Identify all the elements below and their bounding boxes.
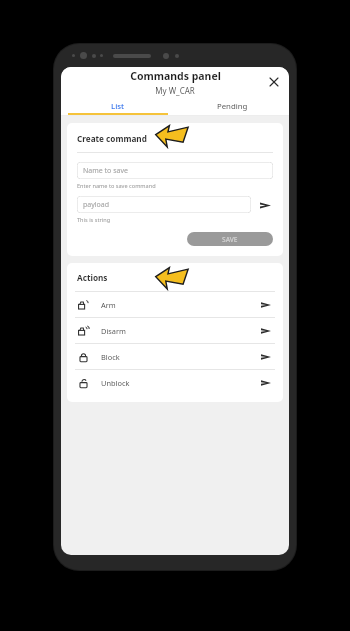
staticText: My W_CAR: [155, 85, 195, 96]
staticText: Create command: [77, 133, 147, 144]
staticText: Enter name to save command: [77, 182, 156, 190]
staticText: Commands panel: [130, 69, 221, 83]
staticText: List: [111, 101, 125, 112]
staticText: Disarm: [101, 326, 126, 336]
button[interactable]: Pending: [175, 97, 289, 115]
button[interactable]: Block: [67, 344, 283, 369]
staticText: Block: [101, 352, 120, 362]
button[interactable]: List: [61, 97, 175, 115]
staticText: Pending: [217, 101, 248, 112]
button[interactable]: Disarm: [67, 318, 283, 343]
staticText: Name to save: [83, 166, 128, 176]
button[interactable]: Send payload: [257, 197, 273, 213]
button[interactable]: Name to save: [77, 162, 273, 179]
staticText: Arm: [101, 300, 116, 310]
staticText: Actions: [77, 272, 108, 283]
staticText: Unblock: [101, 378, 130, 388]
button[interactable]: Close: [265, 73, 283, 91]
staticText: This is string: [77, 216, 111, 224]
button[interactable]: Unblock: [67, 370, 283, 395]
button[interactable]: Arm: [67, 292, 283, 317]
button[interactable]: payload: [77, 196, 251, 213]
staticText: SAVE: [222, 235, 238, 244]
button[interactable]: SAVE: [187, 232, 273, 246]
staticText: payload: [83, 200, 110, 210]
